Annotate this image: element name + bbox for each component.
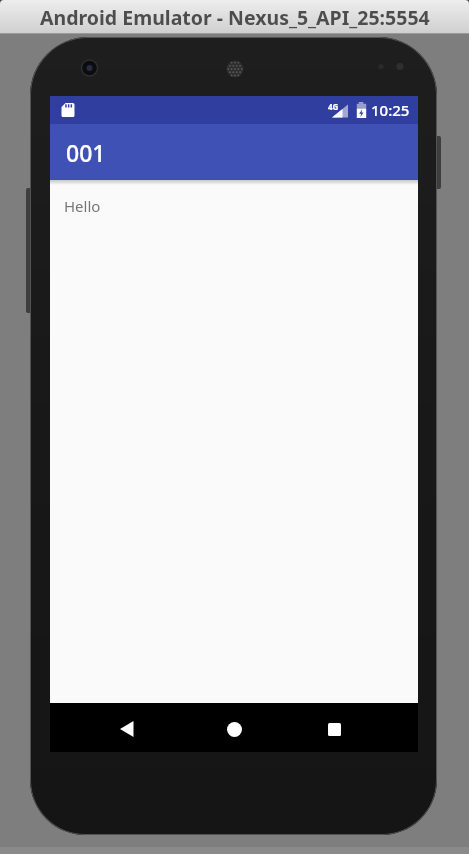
staticText: 001 xyxy=(66,137,106,168)
button[interactable]: 001 xyxy=(50,124,418,180)
staticText: Android Emulator - Nexus_5_API_25:5554 xyxy=(40,4,430,31)
staticText: 4G xyxy=(328,101,339,112)
staticText: 10:25 xyxy=(371,100,410,120)
staticText: Hello xyxy=(64,196,101,216)
button[interactable] xyxy=(116,717,140,741)
button[interactable] xyxy=(222,717,246,741)
button[interactable] xyxy=(322,717,346,741)
